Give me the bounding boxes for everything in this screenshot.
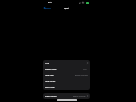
staticText: Serial Number: [45, 86, 55, 88]
other: Wi-Fi: [82, 2, 84, 4]
staticText: Limited Warranty: [45, 95, 57, 97]
staticText: About: [64, 7, 69, 9]
button[interactable]: Model Name: [43, 72, 90, 78]
other: Cellular signal: [79, 2, 80, 4]
staticText: Name: [45, 62, 50, 64]
button[interactable]: Name: [43, 60, 90, 66]
staticText: 9:41: [48, 1, 52, 4]
button[interactable]: Model Number: [43, 78, 90, 84]
staticText: Model Number: [45, 80, 56, 82]
button[interactable]: Limited Warranty: [43, 93, 90, 99]
staticText: Software Version: [45, 68, 57, 70]
staticText: Expires 10/15/2021: [73, 95, 86, 97]
button[interactable]: Serial Number: [43, 84, 90, 90]
staticText: 16.7.1: [83, 68, 88, 70]
staticText: Model Name: [45, 74, 54, 76]
other: Battery: [86, 2, 89, 4]
staticText: iPhone 12 Pro Max: [75, 74, 88, 76]
button[interactable]: Software Version: [43, 66, 90, 72]
button[interactable]: General: [41, 7, 53, 9]
staticText: General: [45, 7, 51, 9]
